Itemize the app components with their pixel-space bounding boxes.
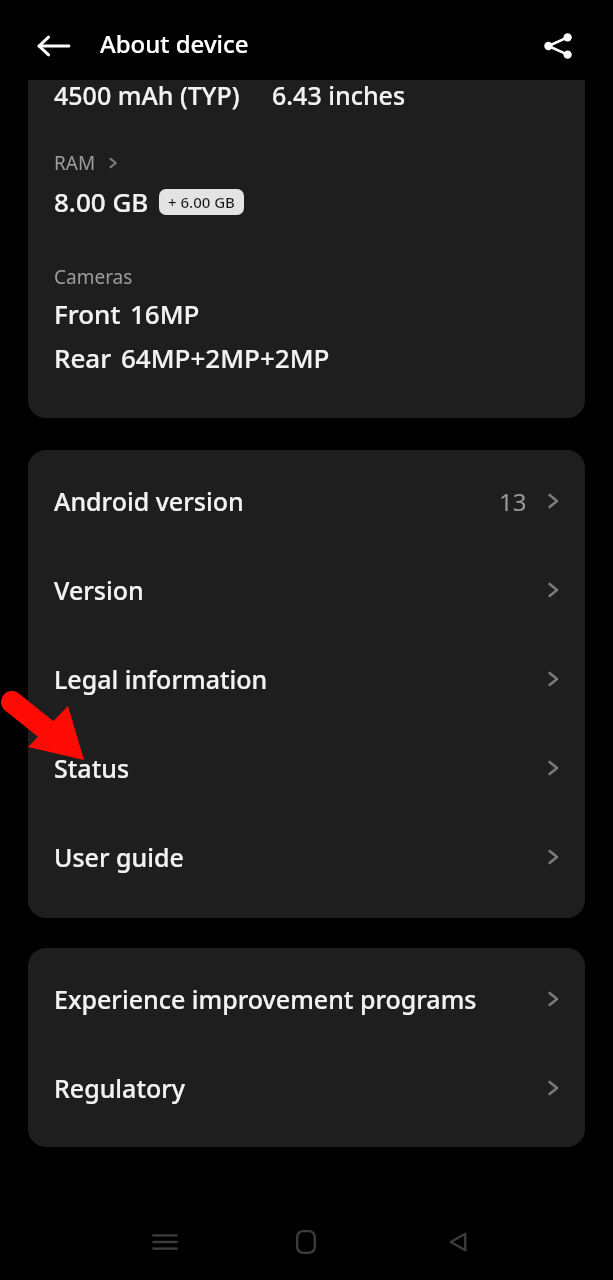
staticText: Legal information [54,662,268,696]
button[interactable]: Regulatory [28,1049,585,1127]
staticText: Regulatory [54,1071,186,1105]
button[interactable]: Legal information [28,640,585,718]
staticText: 16MP [130,296,200,331]
staticText: RAM [54,150,96,176]
staticText: About device [100,27,249,60]
button[interactable]: Experience improvement programs [28,960,585,1038]
button[interactable]: Recent apps [135,1212,195,1272]
staticText: Rear [54,340,112,375]
button[interactable]: Version [28,551,585,629]
button[interactable]: Android version [28,462,585,540]
staticText: Cameras [54,264,133,290]
staticText: Android version [54,484,244,518]
staticText: 4500 mAh (TYP) [54,80,240,112]
staticText: Experience improvement programs [54,982,477,1016]
staticText: Status [54,751,130,785]
staticText: 13 [499,485,527,518]
staticText: + 6.00 GB [168,192,235,212]
button[interactable]: RAM [28,146,585,236]
button[interactable]: Status [28,729,585,807]
staticText: User guide [54,840,184,874]
staticText: 8.00 GB [54,184,149,219]
button[interactable]: Home [276,1212,336,1272]
button[interactable]: Share [528,16,588,76]
button[interactable]: Cameras [28,262,585,392]
staticText: Front [54,296,121,331]
button[interactable]: Back [24,16,84,76]
staticText: Version [54,573,144,607]
button[interactable]: Back [428,1212,488,1272]
staticText: 6.43 inches [272,80,406,112]
staticText: 64MP+2MP+2MP [121,340,330,375]
button[interactable]: User guide [28,818,585,896]
